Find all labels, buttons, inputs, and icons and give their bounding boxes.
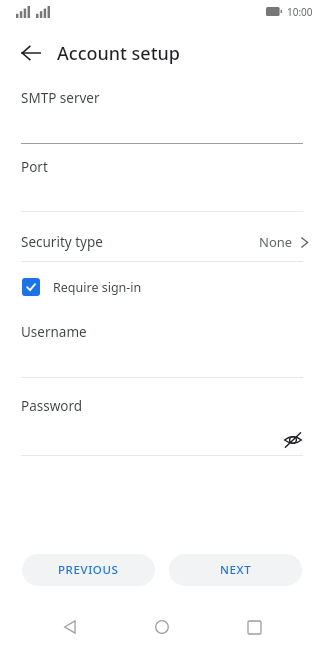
button[interactable]: Back bbox=[10, 32, 52, 74]
button[interactable]: Home bbox=[140, 606, 184, 648]
button[interactable]: NEXT bbox=[169, 554, 302, 586]
staticText: Username bbox=[21, 323, 87, 341]
staticText: Require sign-in bbox=[53, 279, 142, 296]
staticText: Port bbox=[21, 158, 48, 176]
staticText: NEXT bbox=[220, 562, 252, 578]
button[interactable]: Require sign-in bbox=[0, 272, 324, 302]
button[interactable]: Username bbox=[0, 320, 324, 354]
button[interactable]: Show password bbox=[277, 424, 309, 456]
button[interactable]: Password bbox=[0, 394, 324, 428]
staticText: Password bbox=[21, 397, 83, 415]
staticText: Account setup bbox=[57, 41, 181, 66]
staticText: None bbox=[259, 233, 293, 251]
button[interactable]: Port bbox=[0, 155, 324, 189]
button[interactable]: SMTP server bbox=[0, 86, 324, 120]
button[interactable]: PREVIOUS bbox=[22, 554, 155, 586]
button[interactable]: Back bbox=[48, 606, 92, 648]
staticText: 10:00 bbox=[287, 5, 313, 19]
button[interactable]: Recents bbox=[232, 606, 276, 648]
staticText: SMTP server bbox=[21, 89, 100, 107]
staticText: Security type bbox=[21, 233, 103, 251]
staticText: PREVIOUS bbox=[58, 562, 119, 578]
button[interactable]: Security type bbox=[0, 225, 324, 259]
